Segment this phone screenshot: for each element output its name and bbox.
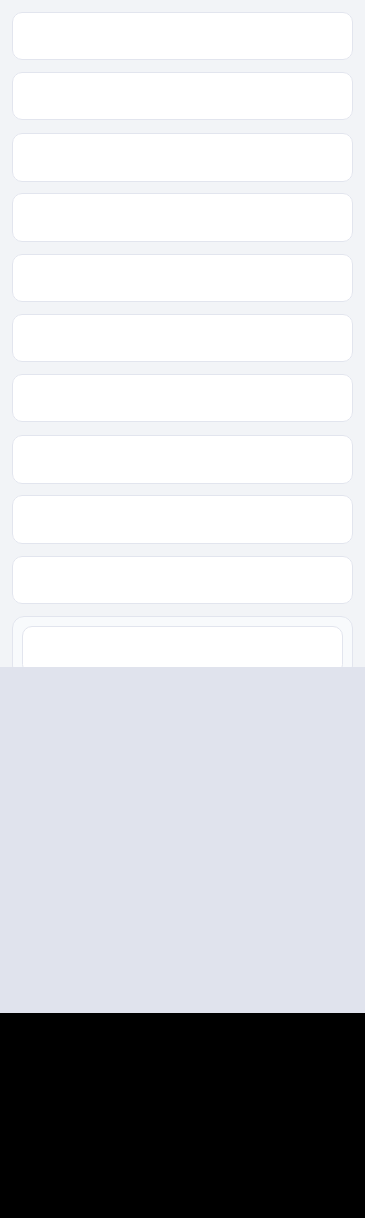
button[interactable]: List item 2 (12, 72, 353, 121)
button[interactable]: List item 5 (12, 254, 353, 303)
button[interactable]: List item 8 (12, 435, 353, 484)
button[interactable]: List item 10 (12, 556, 353, 605)
button[interactable]: List item 6 (12, 314, 353, 363)
button[interactable]: List item 7 (12, 374, 353, 423)
button[interactable]: Selected list item (12, 616, 353, 678)
button[interactable]: List item 9 (12, 495, 353, 544)
button[interactable]: List item 1 (12, 12, 353, 61)
button[interactable]: List item 4 (12, 193, 353, 242)
button[interactable]: List item 3 (12, 133, 353, 182)
